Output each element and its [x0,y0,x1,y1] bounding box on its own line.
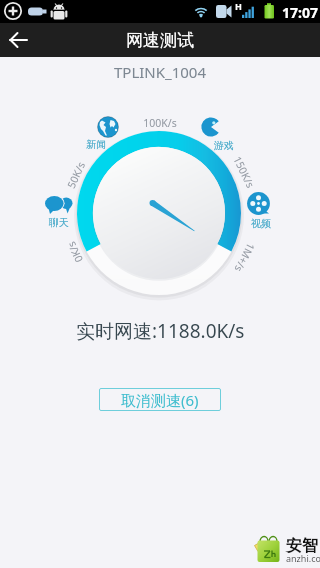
staticText: 实时网速:1188.0K/s [76,318,245,344]
button[interactable]: Back [0,23,38,57]
staticText: anzhi.com [286,552,320,564]
staticText: TPLINK_1004 [114,62,207,82]
staticText: 150K/s [230,154,258,190]
staticText: 50K/s [64,159,88,191]
staticText: 取消测速(6) [121,390,199,410]
staticText: 新闻 [86,138,106,151]
staticText: 安智 [286,536,318,556]
button[interactable]: Chat [43,191,69,217]
button[interactable]: 取消测速(6) [99,388,221,411]
staticText: 视频 [251,217,271,230]
button[interactable]: News [95,114,121,140]
staticText: 1M+/s [231,240,258,274]
button[interactable]: Video [246,191,272,217]
staticText: 0K/s [64,239,86,265]
staticText: H [235,0,242,12]
staticText: 聊天 [49,216,69,229]
staticText: 网速测试 [126,30,194,51]
staticText: 100K/s [143,116,177,130]
button[interactable]: Games [198,114,224,140]
staticText: 游戏 [214,139,234,152]
staticText: 17:07 [282,3,318,22]
